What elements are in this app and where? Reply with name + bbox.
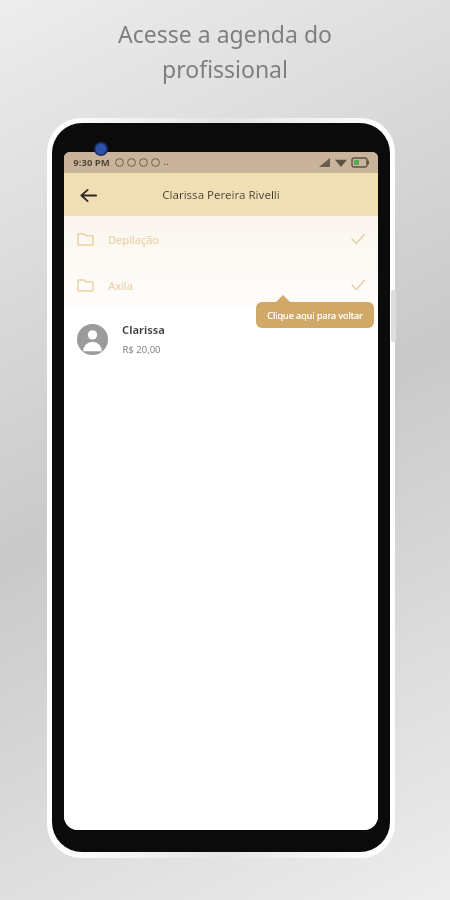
staticText: R$ 20,00 — [122, 343, 161, 356]
staticText: Depilação — [108, 232, 159, 247]
staticText: 9:30 PM — [73, 156, 110, 169]
button[interactable]: Back — [70, 177, 106, 213]
staticText: Axila — [108, 278, 133, 293]
staticText: Acesse a agenda do — [118, 18, 332, 49]
staticText: Clarissa — [122, 322, 165, 337]
staticText: ·· — [163, 157, 169, 169]
button[interactable]: Axila — [64, 262, 378, 308]
button[interactable]: Clique aqui para voltar — [256, 302, 374, 328]
staticText: profissional — [162, 53, 288, 84]
button[interactable]: Depilação — [64, 216, 378, 262]
button[interactable]: Clarissa — [64, 308, 378, 370]
staticText: Clarissa Pereira Rivelli — [162, 187, 280, 203]
staticText: Clique aqui para voltar — [267, 309, 363, 321]
